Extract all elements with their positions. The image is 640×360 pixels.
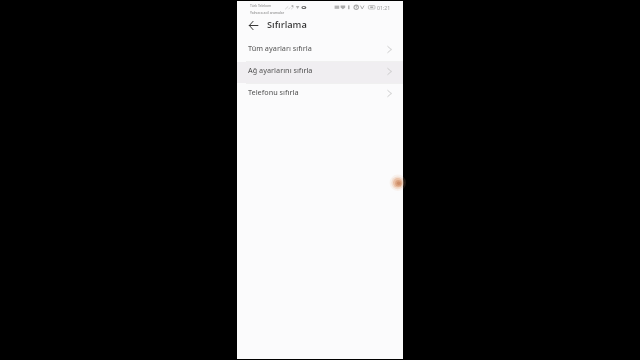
staticText: Telefonu sıfırla (248, 87, 299, 97)
staticText: Ağ ayarlarını sıfırla (248, 65, 313, 75)
staticText: Sıfırlama (267, 18, 307, 31)
staticText: 01:21 (377, 4, 391, 11)
staticText: Yalnızca acil aramalar (250, 10, 285, 15)
button[interactable]: Back (243, 16, 264, 37)
button[interactable]: Tüm ayarları sıfırla (237, 40, 403, 61)
staticText: Tüm ayarları sıfırla (248, 43, 312, 53)
button[interactable]: Telefonu sıfırla (237, 84, 403, 105)
staticText: Türk Telekom (250, 3, 272, 8)
button[interactable]: Ağ ayarlarını sıfırla (237, 62, 403, 83)
